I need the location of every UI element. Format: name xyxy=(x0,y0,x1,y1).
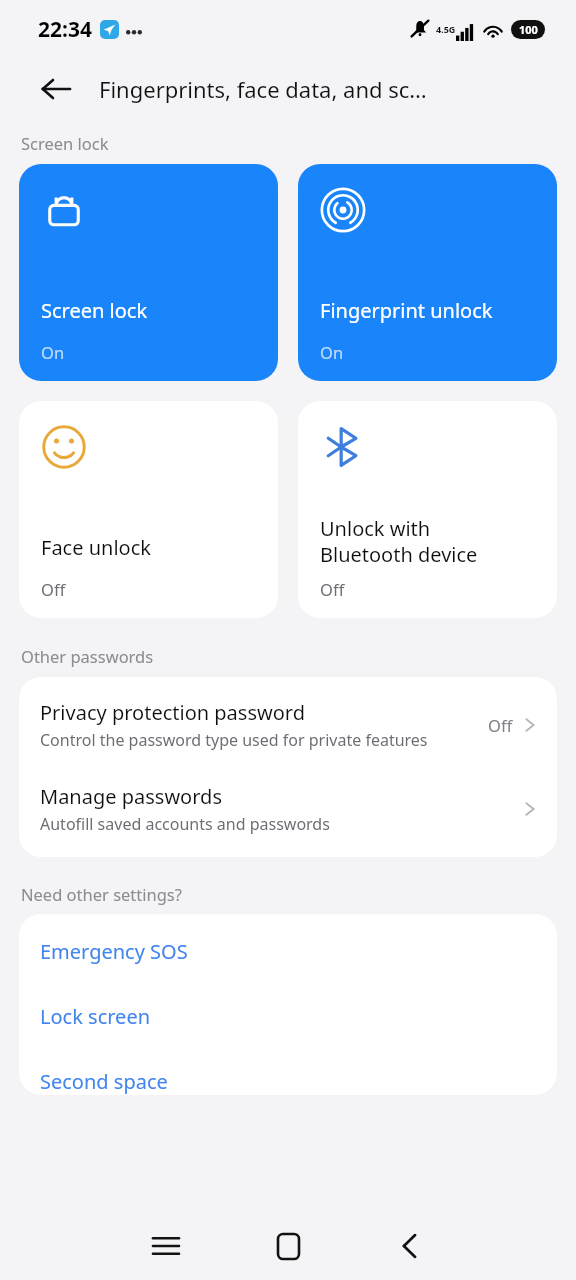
staticText: 4.5G xyxy=(436,23,456,35)
button[interactable]: Privacy protection password xyxy=(19,677,557,769)
staticText: Off xyxy=(320,578,345,600)
button[interactable]: Back xyxy=(28,61,84,117)
staticText: Lock screen xyxy=(40,1003,151,1030)
staticText: Fingerprint unlock xyxy=(320,297,493,324)
button[interactable]: Emergency SOS xyxy=(19,914,557,965)
button[interactable]: Face unlock xyxy=(19,401,278,618)
staticText: Face unlock xyxy=(41,534,151,561)
staticText: 22:34 xyxy=(38,15,92,44)
button[interactable]: Screen lock xyxy=(19,164,278,381)
button[interactable]: Fingerprint unlock xyxy=(298,164,557,381)
staticText: Autofill saved accounts and passwords xyxy=(40,813,330,835)
staticText: Emergency SOS xyxy=(40,938,188,965)
staticText: Screen lock xyxy=(21,132,109,154)
staticText: Off xyxy=(488,714,513,736)
staticText: Control the password type used for priva… xyxy=(40,729,428,751)
staticText: Unlock with Bluetooth device xyxy=(320,515,478,568)
staticText: Fingerprints, face data, and sc… xyxy=(99,74,427,104)
staticText: Other passwords xyxy=(21,645,154,667)
button[interactable]: Home xyxy=(245,1212,331,1280)
staticText: Privacy protection password xyxy=(40,699,305,726)
button[interactable]: Back xyxy=(367,1212,453,1280)
staticText: Off xyxy=(41,578,66,600)
staticText: 100 xyxy=(519,22,538,37)
button[interactable]: Unlock with Bluetooth device xyxy=(298,401,557,618)
button[interactable]: Manage passwords xyxy=(19,769,557,857)
button[interactable]: Recent apps xyxy=(123,1212,209,1280)
staticText: Second space xyxy=(40,1068,168,1095)
button[interactable]: Lock screen xyxy=(19,965,557,1030)
staticText: On xyxy=(320,341,344,363)
staticText: Manage passwords xyxy=(40,783,222,810)
staticText: Need other settings? xyxy=(21,883,182,905)
staticText: Screen lock xyxy=(41,297,148,324)
button[interactable]: Second space xyxy=(19,1030,557,1095)
staticText: On xyxy=(41,341,65,363)
